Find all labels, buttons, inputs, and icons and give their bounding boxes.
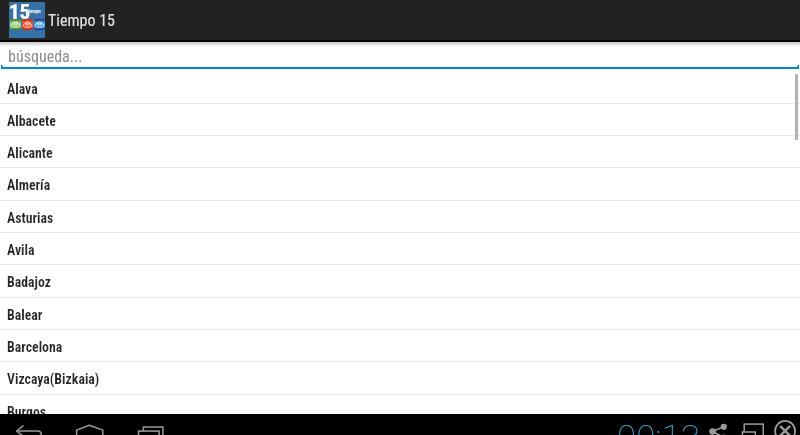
staticText: Almería [7,177,51,193]
staticText: Asturias [7,210,54,226]
staticText: Balear [7,307,43,323]
button[interactable]: Alicante [0,136,800,168]
staticText: Badajoz [7,274,51,290]
staticText: Alicante [7,145,53,161]
button[interactable]: Burgos [0,395,800,427]
button[interactable]: Share [705,414,733,435]
button[interactable]: Vizcaya(Bizkaia) [0,362,800,394]
button[interactable]: Avila [0,233,800,265]
staticText: Tiempo 15 [48,11,115,30]
button[interactable]: Back [8,414,50,435]
button[interactable]: Alava [0,72,800,104]
button[interactable]: Recent apps [130,414,172,435]
staticText: Barcelona [7,339,63,355]
button[interactable]: Screenshot [738,414,768,435]
button[interactable]: Close [772,414,798,435]
staticText: Albacete [7,113,56,129]
button[interactable]: Asturias [0,201,800,233]
button[interactable]: Home [70,414,110,435]
button[interactable]: 00:13 [617,418,700,435]
staticText: Vizcaya(Bizkaia) [7,371,100,387]
button[interactable]: Almería [0,168,800,200]
staticText: tiempo [27,8,41,14]
staticText: Avila [7,242,35,258]
button[interactable]: búsqueda... [0,47,800,65]
button[interactable]: Balear [0,298,800,330]
button[interactable]: Badajoz [0,265,800,297]
button[interactable]: Albacete [0,104,800,136]
button[interactable]: 15 [0,0,130,40]
staticText: Burgos [7,404,47,420]
staticText: Alava [7,81,38,97]
button[interactable]: Barcelona [0,330,800,362]
staticText: 15 [9,0,31,25]
staticText: búsqueda... [8,47,83,65]
